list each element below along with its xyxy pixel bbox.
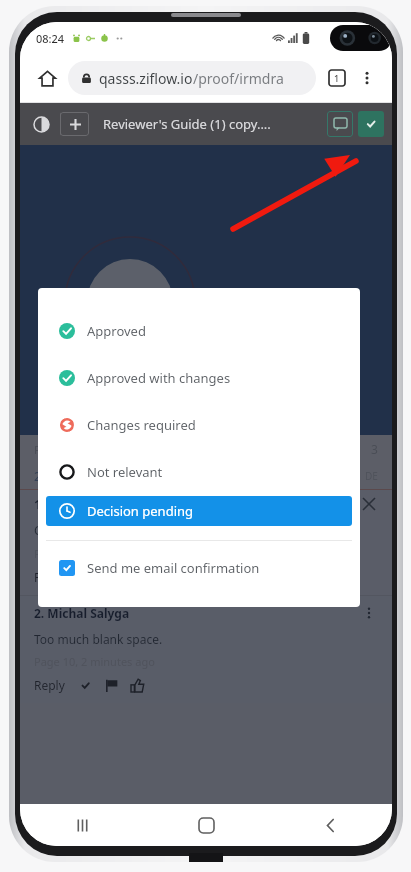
- button[interactable]: Submit decision: [358, 111, 384, 137]
- button[interactable]: Comments: [327, 111, 353, 137]
- staticText: Page 10, 2 minutes ago: [34, 654, 155, 669]
- button[interactable]: Home: [30, 61, 64, 95]
- button[interactable]: Add version: [61, 112, 89, 136]
- button[interactable]: Back: [307, 804, 353, 846]
- button[interactable]: Approved with changes: [46, 363, 352, 393]
- staticText: Changes required: [87, 416, 196, 434]
- staticText: Approved: [87, 322, 146, 340]
- staticText: Approved with changes: [87, 369, 231, 387]
- staticText: Decision pending: [87, 502, 194, 520]
- button[interactable]: qasss.ziflow.io: [68, 61, 316, 95]
- button[interactable]: Send me email confirmation: [46, 555, 352, 581]
- button[interactable]: Contrast: [28, 111, 54, 137]
- button[interactable]: Not relevant: [46, 457, 352, 487]
- staticText: 2.: [34, 468, 48, 484]
- staticText: 1.: [34, 495, 46, 513]
- button[interactable]: Like: [129, 677, 145, 693]
- button[interactable]: Changes required: [46, 410, 352, 440]
- button[interactable]: Approved: [46, 316, 352, 346]
- button[interactable]: Flag: [103, 569, 119, 585]
- button[interactable]: Resolve: [77, 677, 93, 693]
- staticText: 1: [334, 72, 340, 84]
- button[interactable]: Reply: [34, 569, 65, 585]
- button[interactable]: Home: [183, 804, 229, 846]
- staticText: DE: [365, 469, 378, 483]
- staticText: qasss.ziflow.io: [99, 69, 193, 88]
- button[interactable]: Flag: [103, 677, 119, 693]
- staticText: Page 1, 3 minutes ago: [34, 546, 149, 561]
- button[interactable]: More options: [352, 63, 382, 93]
- staticText: Send me email confirmation: [87, 559, 260, 577]
- staticText: 08:24: [36, 31, 65, 46]
- button[interactable]: Resolve: [77, 569, 93, 585]
- button[interactable]: Close: [360, 495, 378, 513]
- button[interactable]: Reply: [34, 677, 65, 693]
- staticText: Too much blank space.: [34, 631, 163, 647]
- button[interactable]: Like: [129, 569, 145, 585]
- staticText: C: [34, 522, 42, 538]
- staticText: Ziflow: [228, 287, 280, 310]
- staticText: Reviewer's Guide (1) copy....: [103, 115, 321, 133]
- staticText: Pag: [34, 442, 54, 457]
- staticText: 3: [371, 441, 378, 457]
- staticText: Not relevant: [87, 463, 163, 481]
- button[interactable]: Comment options: [360, 604, 378, 622]
- button[interactable]: Tabs: [322, 63, 352, 93]
- staticText: 2. Michal Salyga: [34, 605, 130, 621]
- staticText: /proof/irmdra: [193, 69, 284, 88]
- button[interactable]: Decision pending: [46, 496, 352, 526]
- button[interactable]: Recents: [59, 804, 105, 846]
